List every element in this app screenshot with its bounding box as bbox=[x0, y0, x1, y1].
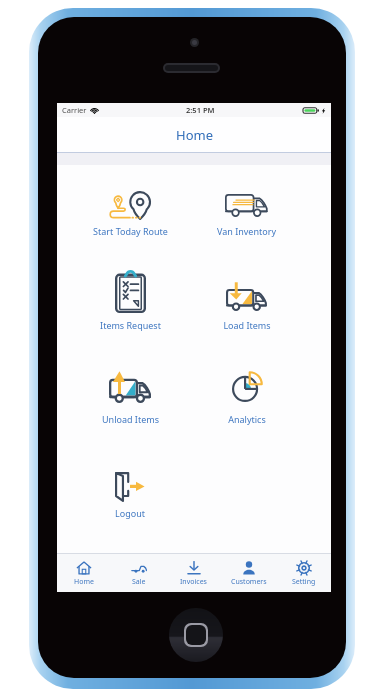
staticText: Van Inventory bbox=[217, 225, 276, 237]
button[interactable]: Logout bbox=[72, 447, 188, 541]
staticText: Unload Items bbox=[102, 413, 159, 425]
button[interactable]: Customers bbox=[221, 554, 276, 592]
button[interactable]: Home bbox=[57, 554, 111, 592]
button[interactable]: Start Today Route bbox=[72, 165, 188, 259]
staticText: Items Request bbox=[100, 319, 161, 331]
button[interactable]: Analytics bbox=[188, 353, 305, 447]
staticText: Carrier bbox=[62, 105, 87, 115]
staticText: Setting bbox=[292, 577, 316, 587]
button[interactable]: Setting bbox=[276, 554, 331, 592]
staticText: Start Today Route bbox=[93, 225, 168, 237]
staticText: Invoices bbox=[180, 577, 207, 587]
staticText: Home bbox=[176, 126, 213, 144]
staticText: 2:51 PM bbox=[186, 105, 215, 115]
staticText: Analytics bbox=[228, 413, 266, 425]
button[interactable]: Van Inventory bbox=[188, 165, 305, 259]
staticText: Home bbox=[74, 577, 94, 587]
button[interactable]: Unload Items bbox=[72, 353, 188, 447]
button[interactable]: Load Items bbox=[188, 259, 305, 353]
button[interactable]: Items Request bbox=[72, 259, 188, 353]
button[interactable]: Invoices bbox=[166, 554, 221, 592]
staticText: Customers bbox=[231, 577, 267, 587]
staticText: Sale bbox=[132, 577, 146, 587]
button[interactable]: Sale bbox=[111, 554, 166, 592]
staticText: Load Items bbox=[223, 319, 271, 331]
staticText: Logout bbox=[115, 507, 145, 519]
